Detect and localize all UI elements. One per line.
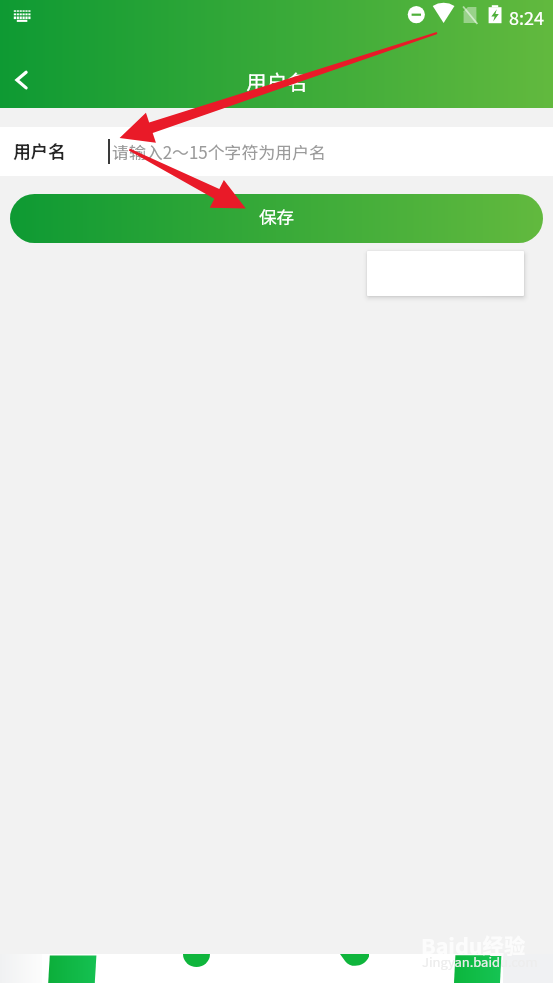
button[interactable]: 保存 (10, 194, 543, 243)
button[interactable]: Back (0, 64, 44, 108)
staticText: 保存 (259, 204, 294, 229)
staticText: 8:24 (509, 4, 544, 30)
staticText: 用户名 (13, 138, 66, 163)
staticText: 用户名 (246, 66, 308, 96)
button[interactable]: 用户名 (0, 127, 553, 176)
staticText: 请输入2～15个字符为用户名 (112, 139, 326, 163)
staticText: Jingyan.baidu.com (422, 952, 538, 971)
staticText: Baidu经验 (421, 929, 526, 960)
